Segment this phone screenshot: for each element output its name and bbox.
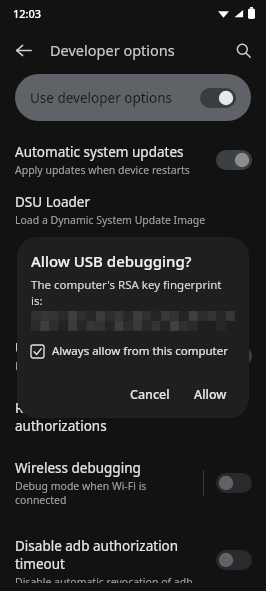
staticText: Load a Dynamic System Update Image [15,213,206,227]
staticText: Debug mode when USB is connected [15,359,197,373]
button[interactable]: Always allow from this computer [31,341,235,361]
staticText: Developer options [50,40,175,60]
button[interactable]: Wireless debugging [214,471,254,495]
button[interactable]: USB debugging [0,331,266,381]
staticText: The computer's RSA key fingerprint is: [31,277,235,308]
staticText: Automatic system updates [15,143,184,161]
button[interactable]: Allow [186,381,235,408]
button[interactable]: Cancel [122,381,178,408]
button[interactable]: Search [226,33,260,67]
staticText: Always allow from this computer [52,343,229,359]
button[interactable]: USB debugging [214,344,254,368]
staticText: Allow [194,386,227,403]
button[interactable]: Use developer options [15,74,251,121]
staticText: Wireless debugging [15,459,141,477]
button[interactable]: Revoke USB debugging authorizations [0,391,266,443]
staticText: Revoke USB debugging authorizations [15,399,246,435]
staticText: Disable automatic revocation of adb auth… [15,575,206,583]
staticText: Disable adb authorization timeout [15,537,206,573]
button[interactable]: Disable adb authorization timeout [214,548,254,572]
button[interactable]: Wireless debugging [0,451,266,515]
button[interactable]: Automatic system updates [0,135,266,185]
staticText: DSU Loader [15,193,90,211]
button[interactable]: Automatic system updates [214,148,254,172]
staticText: 12:03 [13,6,42,21]
staticText: Allow USB debugging? [31,251,192,271]
staticText: Debug mode when Wi-Fi is connected [15,479,195,507]
staticText: Use developer options [30,89,200,107]
button[interactable]: DSU Loader [0,185,266,235]
staticText: USB debugging [15,339,114,357]
staticText: Cancel [130,386,170,403]
staticText: Apply updates when device restarts [15,163,190,177]
button[interactable]: Back [6,33,40,67]
button[interactable]: Disable adb authorization timeout [0,529,266,591]
